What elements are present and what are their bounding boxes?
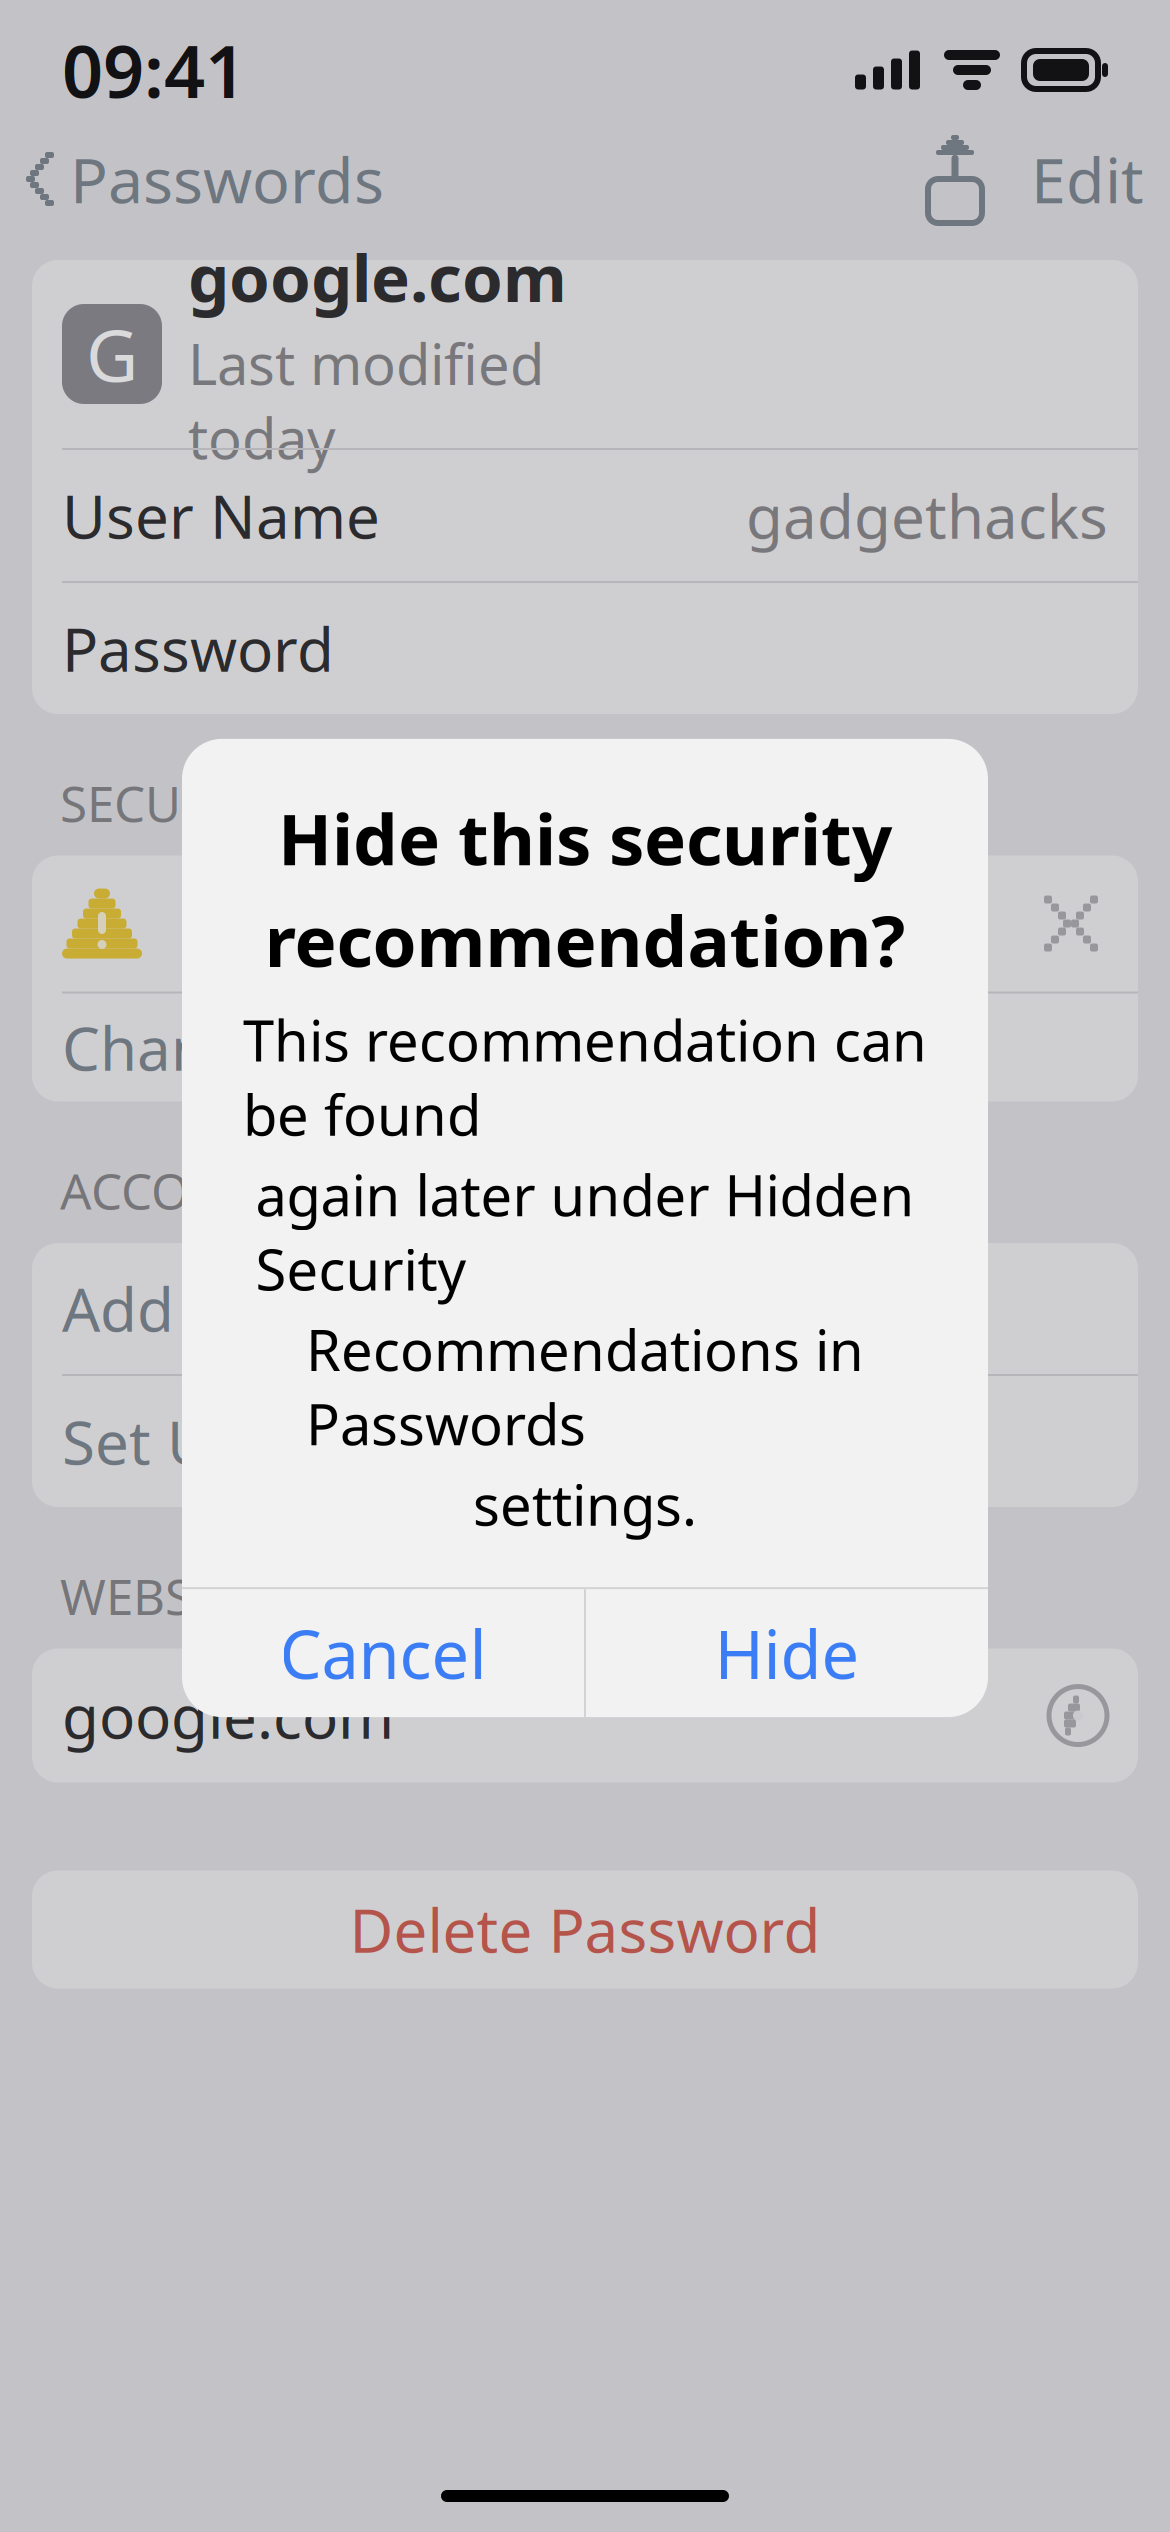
button[interactable]: google.com <box>32 1648 1138 1782</box>
staticText: ACCOUNT <box>60 1157 290 1223</box>
staticText: Hide this security <box>278 791 892 885</box>
staticText: Cancel <box>279 1609 486 1697</box>
button[interactable]: Change Password on Website <box>32 993 1138 1101</box>
staticText: SECURITY RECOMMENDATION <box>60 770 761 835</box>
button[interactable]: Cancel <box>182 1589 584 1717</box>
staticText: Delete Password <box>349 1890 820 1969</box>
staticText: Change Password on Website <box>62 1008 898 1087</box>
staticText: gadgethacks <box>746 476 1108 555</box>
staticText: 09:41 <box>62 22 246 118</box>
button[interactable]: Hide <box>586 1589 988 1717</box>
staticText: again later under Hidden Security <box>255 1157 914 1306</box>
button[interactable]: Share <box>905 120 1005 238</box>
button[interactable]: Password <box>32 583 1138 714</box>
staticText: This recommendation can be found <box>243 1003 927 1151</box>
button[interactable]: Dismiss recommendation <box>1034 885 1108 961</box>
button[interactable]: Passwords <box>0 119 402 239</box>
staticText: Recommendations in Passwords <box>306 1312 864 1461</box>
staticText: User Name <box>62 476 380 555</box>
staticText: Password <box>62 609 334 688</box>
staticText: G <box>86 306 138 402</box>
staticText: WEBSITE <box>60 1563 263 1628</box>
button[interactable]: Add Notes <box>32 1243 1138 1374</box>
button[interactable]: Set Up Verification Code... <box>32 1376 1138 1507</box>
staticText: Add Notes <box>62 1269 357 1348</box>
staticText: Set Up Verification Code... <box>62 1402 791 1481</box>
button[interactable]: Delete Password <box>32 1870 1138 1988</box>
staticText: Hide <box>714 1609 859 1697</box>
staticText: google.com <box>188 233 567 320</box>
staticText: Edit <box>1031 137 1144 221</box>
staticText: Last modified today <box>188 326 544 475</box>
staticText: google.com <box>62 1676 394 1755</box>
button[interactable]: Edit <box>1005 119 1170 239</box>
staticText: settings. <box>473 1467 697 1541</box>
staticText: recommendation? <box>264 893 905 986</box>
staticText: Passwords <box>70 137 384 221</box>
button[interactable]: User Name <box>32 450 1138 581</box>
